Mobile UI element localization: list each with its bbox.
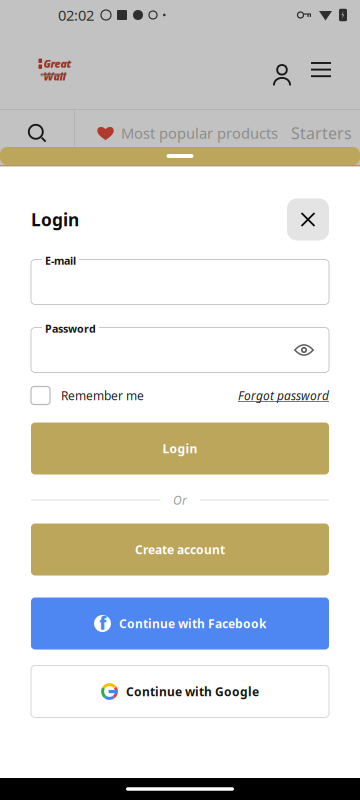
staticText: Wall: [43, 69, 65, 83]
button[interactable]: Close: [287, 198, 329, 240]
staticText: Forgot password: [238, 387, 329, 403]
staticText: Login: [31, 208, 79, 231]
staticText: f: [99, 611, 106, 634]
staticText: Starters: [291, 122, 352, 144]
staticText: Continue with Facebook: [119, 615, 266, 631]
button[interactable]: Most popular products: [97, 110, 278, 156]
staticText: Password: [45, 321, 96, 336]
button[interactable]: Account: [273, 58, 291, 80]
button[interactable]: Search: [0, 110, 74, 156]
button[interactable]: Remember me: [31, 386, 144, 404]
staticText: Continue with Google: [126, 683, 259, 699]
staticText: Login: [162, 440, 197, 456]
button[interactable]: Menu: [311, 62, 331, 77]
button[interactable]: f: [31, 597, 329, 649]
staticText: Most popular products: [121, 123, 278, 143]
staticText: 02:02: [58, 5, 94, 25]
button[interactable]: Starters: [291, 110, 352, 156]
staticText: Or: [173, 492, 187, 508]
staticText: E-mail: [45, 253, 76, 268]
button[interactable]: Great Wall home: [38, 58, 71, 80]
button[interactable]: Continue with Google: [31, 665, 329, 717]
button[interactable]: Login: [31, 422, 329, 474]
staticText: Great: [43, 57, 71, 71]
staticText: Create account: [135, 541, 225, 557]
button[interactable]: Create account: [31, 523, 329, 575]
staticText: Remember me: [61, 387, 144, 403]
button[interactable]: Forgot password: [238, 386, 329, 404]
